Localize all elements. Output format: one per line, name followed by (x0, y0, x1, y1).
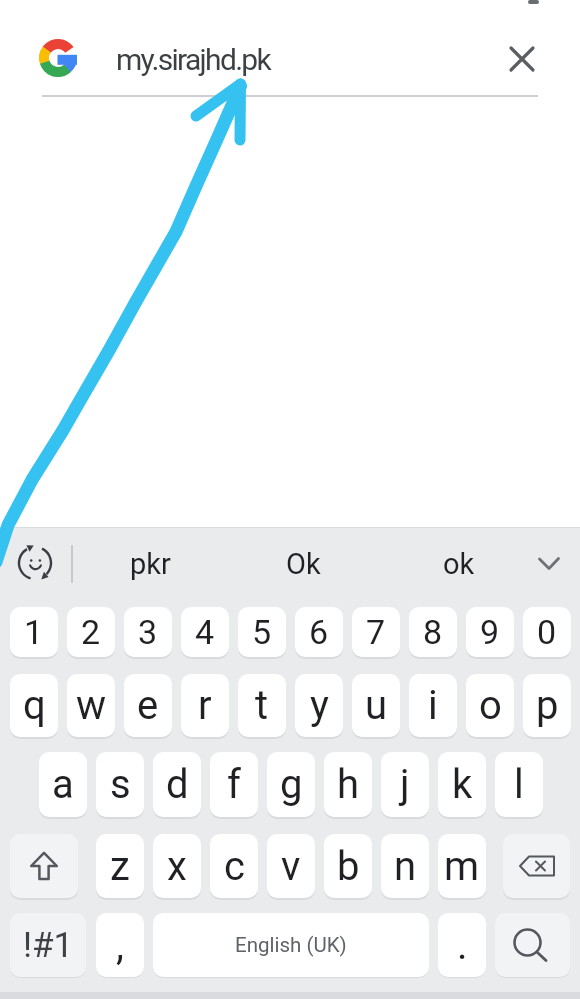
staticText: s (110, 761, 131, 808)
staticText: z (110, 843, 130, 890)
staticText: 7 (366, 612, 386, 652)
staticText: b (337, 843, 360, 890)
button[interactable]: q (10, 674, 58, 737)
staticText: o (479, 682, 502, 729)
staticText: 2 (81, 612, 101, 652)
button[interactable]: English (UK) (153, 913, 429, 977)
staticText: 5 (252, 612, 272, 652)
staticText: my.sirajhd.pk (116, 42, 271, 77)
staticText: 1 (24, 612, 44, 652)
button[interactable]: my.sirajhd.pk (100, 33, 490, 85)
button[interactable]: . (438, 913, 486, 977)
staticText: l (514, 761, 524, 808)
button[interactable]: , (96, 913, 144, 977)
button[interactable]: o (466, 674, 514, 737)
button[interactable]: 5 (238, 607, 286, 657)
button[interactable]: r (181, 674, 229, 737)
button[interactable]: l (495, 752, 543, 817)
button[interactable]: Ok (226, 528, 380, 600)
button[interactable]: n (381, 834, 429, 898)
staticText: , (116, 922, 124, 969)
staticText: 4 (195, 612, 215, 652)
button[interactable]: j (381, 752, 429, 817)
button[interactable]: 3 (124, 607, 172, 657)
button[interactable]: w (67, 674, 115, 737)
button[interactable] (14, 541, 60, 587)
button[interactable]: !#1 (10, 913, 86, 977)
staticText: n (394, 843, 417, 890)
button[interactable]: 6 (295, 607, 343, 657)
button[interactable]: d (153, 752, 201, 817)
button[interactable]: 8 (409, 607, 457, 657)
button[interactable]: h (324, 752, 372, 817)
staticText: p (536, 682, 559, 729)
staticText: a (52, 761, 74, 808)
button[interactable]: 4 (181, 607, 229, 657)
button[interactable] (530, 545, 568, 583)
button[interactable]: v (267, 834, 315, 898)
button[interactable]: e (124, 674, 172, 737)
staticText: c (224, 843, 245, 890)
staticText: Ok (286, 547, 321, 581)
staticText: 8 (423, 612, 443, 652)
button[interactable]: u (352, 674, 400, 737)
staticText: . (457, 922, 468, 969)
staticText: y (310, 682, 329, 729)
button[interactable]: x (153, 834, 201, 898)
button[interactable]: y (295, 674, 343, 737)
staticText: f (227, 761, 241, 808)
button[interactable]: z (96, 834, 144, 898)
staticText: h (337, 761, 360, 808)
button[interactable]: b (324, 834, 372, 898)
staticText: ok (443, 547, 475, 581)
staticText: u (365, 682, 388, 729)
button[interactable]: ok (382, 528, 536, 600)
button[interactable] (10, 834, 78, 898)
button[interactable]: p (523, 674, 571, 737)
staticText: x (167, 843, 187, 890)
staticText: 9 (480, 612, 500, 652)
staticText: i (428, 682, 438, 729)
button[interactable]: 2 (67, 607, 115, 657)
staticText: 6 (309, 612, 329, 652)
staticText: j (400, 761, 410, 808)
button[interactable]: 7 (352, 607, 400, 657)
staticText: t (255, 682, 269, 729)
button[interactable]: 0 (523, 607, 571, 657)
button[interactable]: 9 (466, 607, 514, 657)
staticText: g (280, 761, 303, 808)
button[interactable] (497, 34, 547, 84)
button[interactable]: g (267, 752, 315, 817)
staticText: 3 (138, 612, 158, 652)
button[interactable]: s (96, 752, 144, 817)
button[interactable]: c (210, 834, 258, 898)
staticText: English (UK) (235, 933, 347, 957)
staticText: 0 (537, 612, 557, 652)
staticText: !#1 (23, 925, 74, 966)
button[interactable]: f (210, 752, 258, 817)
staticText: d (166, 761, 189, 808)
button[interactable]: i (409, 674, 457, 737)
staticText: r (198, 682, 212, 729)
button[interactable]: 1 (10, 607, 58, 657)
button[interactable]: m (438, 834, 486, 898)
button[interactable]: pkr (86, 528, 214, 600)
staticText: e (137, 682, 159, 729)
staticText: k (452, 761, 473, 808)
button[interactable]: a (39, 752, 87, 817)
button[interactable]: k (438, 752, 486, 817)
staticText: m (444, 843, 480, 890)
button[interactable]: t (238, 674, 286, 737)
button[interactable] (503, 834, 570, 898)
staticText: pkr (130, 547, 171, 581)
staticText: v (281, 843, 301, 890)
staticText: q (23, 682, 46, 729)
button[interactable] (495, 913, 570, 977)
staticText: w (76, 682, 107, 729)
